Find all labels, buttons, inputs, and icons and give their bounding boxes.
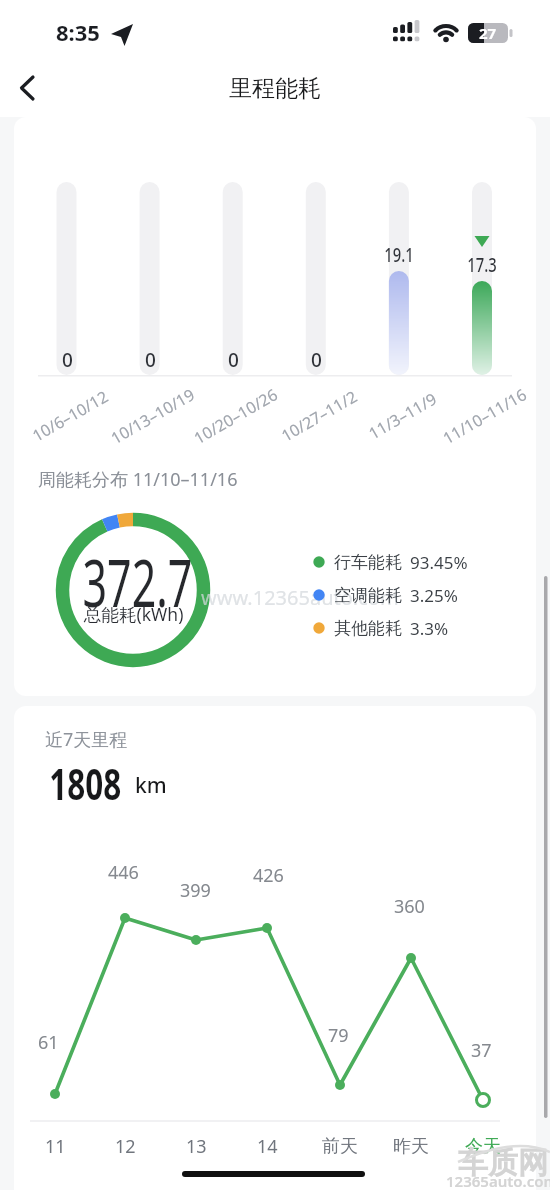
button[interactable]: 其他能耗 — [313, 615, 449, 641]
button[interactable]: 11 — [25, 1133, 85, 1159]
staticText: 里程能耗 — [229, 74, 321, 103]
staticText: 426 — [253, 863, 284, 887]
staticText: 10/27–11/2 — [277, 385, 361, 447]
staticText: 0 — [311, 347, 322, 371]
staticText: 27 — [479, 23, 497, 43]
staticText: 前天 — [322, 1135, 358, 1158]
staticText: 399 — [180, 878, 211, 902]
staticText: 昨天 — [393, 1135, 429, 1158]
button[interactable] — [387, 180, 411, 377]
staticText: 79 — [328, 1023, 349, 1047]
staticText: 13 — [186, 1134, 207, 1159]
staticText: 3.25% — [410, 584, 458, 607]
staticText: 10/20–10/26 — [190, 383, 282, 449]
staticText: 0 — [228, 347, 239, 371]
staticText: 11/3–11/9 — [364, 388, 440, 444]
button[interactable]: 行车能耗 — [313, 549, 468, 575]
button[interactable]: 前天 — [310, 1133, 370, 1159]
button[interactable] — [304, 180, 328, 377]
staticText: 行车能耗 — [334, 552, 402, 573]
staticText: 10/13–10/19 — [107, 383, 199, 449]
button[interactable] — [470, 180, 494, 377]
button[interactable] — [6, 66, 50, 110]
button[interactable]: 空调能耗 — [313, 582, 458, 608]
staticText: 周能耗分布 11/10–11/16 — [38, 467, 238, 492]
staticText: 12365auto.com — [446, 1171, 550, 1190]
staticText: 1808 — [49, 754, 122, 806]
staticText: 17.3 — [467, 252, 497, 276]
button[interactable] — [221, 180, 245, 377]
staticText: 61 — [38, 1030, 59, 1054]
staticText: 3.3% — [410, 617, 449, 640]
staticText: 其他能耗 — [334, 618, 402, 639]
staticText: 总能耗(kWh) — [84, 602, 184, 626]
staticText: km — [135, 771, 167, 800]
button[interactable]: 14 — [237, 1133, 297, 1159]
staticText: 8:35 — [56, 17, 100, 47]
staticText: 0 — [62, 347, 73, 371]
staticText: www.12365auto.com — [201, 584, 399, 610]
button[interactable]: 今天 — [453, 1133, 513, 1159]
staticText: 37 — [471, 1038, 492, 1062]
staticText: 空调能耗 — [334, 585, 402, 606]
staticText: 11/10–11/16 — [439, 383, 531, 449]
staticText: 372.7 — [83, 536, 192, 612]
staticText: 车质网 — [458, 1144, 548, 1182]
staticText: 360 — [394, 894, 425, 918]
button[interactable]: 13 — [166, 1133, 226, 1159]
button[interactable] — [138, 180, 162, 377]
button[interactable] — [55, 180, 79, 377]
staticText: 近7天里程 — [45, 727, 128, 752]
button[interactable]: 昨天 — [381, 1133, 441, 1159]
staticText: 19.1 — [384, 242, 414, 266]
staticText: 12 — [115, 1134, 136, 1159]
staticText: 10/6–10/12 — [28, 385, 112, 447]
staticText: 0 — [145, 347, 156, 371]
staticText: 14 — [257, 1134, 278, 1159]
staticText: 今天 — [465, 1135, 501, 1158]
staticText: 11 — [45, 1134, 66, 1159]
staticText: 446 — [108, 860, 139, 884]
staticText: 93.45% — [410, 551, 468, 574]
button[interactable]: 12 — [95, 1133, 155, 1159]
